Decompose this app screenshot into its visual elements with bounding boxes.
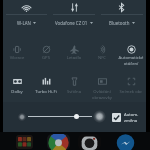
staticText: Vodafone CZ 01: [55, 20, 88, 26]
staticText: Bluetooth: [109, 20, 130, 26]
button[interactable]: GPS: [32, 40, 60, 62]
staticText: Snímek obr.: [117, 89, 145, 95]
button[interactable]: Snímek obr.: [117, 72, 145, 94]
staticText: Letadlo: [60, 55, 88, 61]
staticText: W-LAN: [17, 20, 31, 26]
button[interactable]: W-LAN: [3, 0, 50, 27]
button[interactable]: Vibrace: [3, 40, 31, 62]
button[interactable]: Ovládání obrazovky: [88, 72, 116, 94]
button[interactable]: NFC: [88, 40, 116, 62]
staticText: Svítilna: [60, 89, 88, 95]
button[interactable]: Messenger: [114, 134, 137, 150]
button[interactable]: Svítilna: [60, 72, 88, 94]
staticText: Automatické otáčení: [117, 55, 145, 66]
button[interactable]: Folder: [16, 135, 33, 149]
staticText: NFC: [88, 55, 116, 61]
button[interactable]: Letadlo: [60, 40, 88, 62]
button[interactable]: Photos: [47, 134, 70, 150]
button[interactable]: Bluetooth: [98, 0, 146, 27]
button[interactable]: Automatický jas: [112, 113, 121, 122]
button[interactable]: Instagram: [78, 134, 101, 150]
button[interactable]: Automatické otáčení: [117, 40, 145, 62]
button[interactable]: Vodafone CZ 01: [50, 0, 98, 27]
staticText: Vibrace: [3, 55, 31, 61]
staticText: Autom. změna: [124, 112, 139, 123]
staticText: Ovládání obrazovky: [88, 89, 116, 100]
staticText: GPS: [32, 55, 60, 61]
staticText: Turbo Hi-Fi: [32, 89, 60, 95]
staticText: Dolby: [3, 89, 31, 95]
button[interactable]: Dolby: [3, 72, 31, 94]
button[interactable]: Turbo Hi-Fi: [32, 72, 60, 94]
